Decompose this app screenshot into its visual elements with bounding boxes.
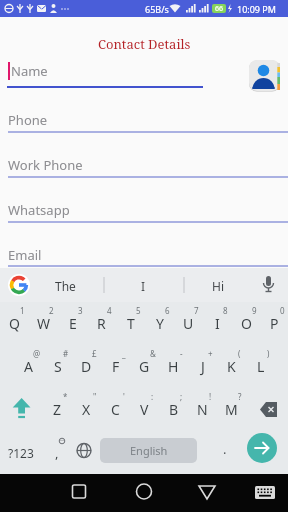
staticText: £ xyxy=(92,348,97,359)
button[interactable] xyxy=(248,59,281,92)
button[interactable] xyxy=(8,274,30,296)
staticText: & xyxy=(150,348,156,359)
staticText: 10:09 PM xyxy=(237,3,276,15)
button[interactable]: J xyxy=(188,345,217,388)
staticText: H xyxy=(168,357,179,376)
button[interactable]: N xyxy=(188,388,217,431)
staticText: L xyxy=(257,357,265,376)
staticText: B xyxy=(169,400,179,419)
staticText: * xyxy=(63,391,68,402)
staticText: K xyxy=(227,357,236,376)
button[interactable]: English xyxy=(100,438,197,463)
staticText: English xyxy=(130,443,168,458)
staticText: ! xyxy=(209,391,212,402)
staticText: + xyxy=(208,348,213,359)
staticText: M xyxy=(225,400,238,419)
button[interactable]: C xyxy=(101,388,130,431)
button[interactable]: U xyxy=(174,302,203,345)
staticText: 0 xyxy=(280,305,285,316)
staticText: @ xyxy=(33,348,41,359)
button[interactable]: S xyxy=(43,345,72,388)
button[interactable]: G xyxy=(130,345,159,388)
button[interactable]: R xyxy=(87,302,116,345)
staticText: Y xyxy=(156,314,164,333)
button[interactable] xyxy=(130,479,158,507)
button[interactable]: W xyxy=(29,302,58,345)
staticText: P xyxy=(270,314,279,333)
staticText: Contact Details xyxy=(98,35,191,53)
button[interactable] xyxy=(246,388,288,431)
staticText: V xyxy=(140,400,149,419)
button[interactable]: T xyxy=(116,302,145,345)
button[interactable]: E xyxy=(58,302,87,345)
staticText: ; xyxy=(180,391,183,402)
button[interactable]: Hi xyxy=(212,278,224,294)
staticText: F xyxy=(112,357,120,376)
staticText: J xyxy=(201,357,205,376)
button[interactable]: . xyxy=(223,440,227,458)
staticText: Whatsapp xyxy=(8,201,70,219)
button[interactable] xyxy=(193,479,221,507)
staticText: N xyxy=(197,400,208,419)
button[interactable]: B xyxy=(159,388,188,431)
staticText: U xyxy=(183,314,194,333)
staticText: Z xyxy=(53,400,62,419)
button[interactable] xyxy=(247,433,277,463)
staticText: 65B/s xyxy=(145,3,169,15)
button[interactable]: H xyxy=(159,345,188,388)
button[interactable]: X xyxy=(72,388,101,431)
staticText: Name xyxy=(11,62,48,80)
button[interactable]: M xyxy=(217,388,246,431)
staticText: ' xyxy=(123,391,125,402)
staticText: # xyxy=(63,348,69,359)
button[interactable]: Y xyxy=(145,302,174,345)
staticText: ) xyxy=(267,348,270,359)
staticText: - xyxy=(180,348,183,359)
staticText: I xyxy=(215,314,220,333)
button[interactable]: I xyxy=(141,278,146,294)
button[interactable]: K xyxy=(217,345,246,388)
staticText: " xyxy=(93,391,97,402)
button[interactable]: D xyxy=(72,345,101,388)
staticText: R xyxy=(97,314,106,333)
button[interactable]: I xyxy=(203,302,232,345)
button[interactable]: The xyxy=(55,278,76,294)
staticText: 6 xyxy=(165,305,170,316)
button[interactable]: Q xyxy=(0,302,29,345)
staticText: Work Phone xyxy=(8,156,83,174)
button[interactable]: A xyxy=(14,345,43,388)
button[interactable]: F xyxy=(101,345,130,388)
staticText: 4 xyxy=(107,305,112,316)
button[interactable]: V xyxy=(130,388,159,431)
button[interactable] xyxy=(65,479,93,507)
staticText: Q xyxy=(9,314,20,333)
staticText: 5 xyxy=(136,305,141,316)
button[interactable] xyxy=(251,479,279,507)
button[interactable]: , xyxy=(55,444,59,462)
staticText: A xyxy=(24,357,33,376)
button[interactable]: O xyxy=(232,302,261,345)
button[interactable]: Z xyxy=(43,388,72,431)
staticText: C xyxy=(111,400,120,419)
staticText: 7 xyxy=(194,305,199,316)
staticText: _ xyxy=(122,348,126,359)
staticText: ? xyxy=(238,391,242,402)
staticText: W xyxy=(37,314,51,333)
button[interactable]: ?123 xyxy=(8,445,34,461)
staticText: T xyxy=(127,314,135,333)
button[interactable] xyxy=(0,388,43,431)
button[interactable]: L xyxy=(246,345,275,388)
button[interactable]: P xyxy=(261,302,288,345)
staticText: 3 xyxy=(78,305,83,316)
staticText: 8 xyxy=(223,305,228,316)
staticText: ( xyxy=(238,348,241,359)
staticText: G xyxy=(139,357,150,376)
staticText: E xyxy=(69,314,77,333)
staticText: X xyxy=(82,400,91,419)
staticText: 2 xyxy=(49,305,54,316)
